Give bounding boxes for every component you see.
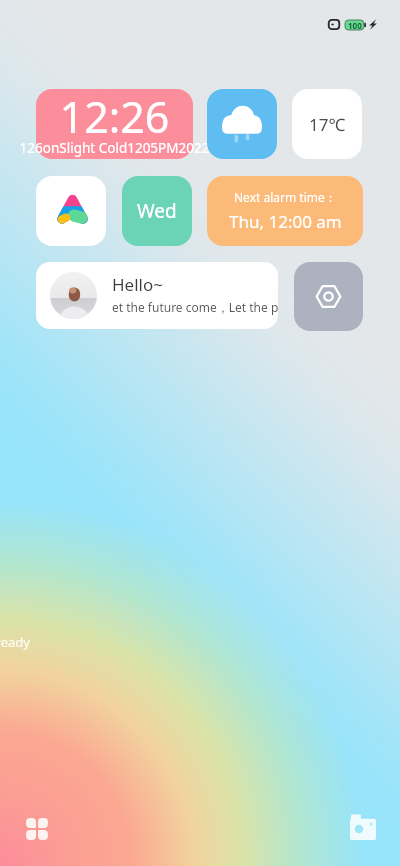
staticText: 17℃ (309, 113, 346, 136)
button[interactable] (36, 89, 193, 159)
staticText: Wed (137, 198, 177, 224)
button[interactable]: Wed (122, 176, 192, 246)
button[interactable]: 17℃ (292, 89, 362, 159)
button[interactable]: Open app (36, 176, 106, 246)
button[interactable]: Camera (343, 807, 383, 847)
button[interactable]: App drawer (17, 809, 57, 849)
staticText: Hello~ (112, 273, 163, 296)
staticText: 126onSlight Cold1205PM2022 (0, 139, 229, 157)
button[interactable]: Next alarm time： (207, 176, 363, 246)
staticText: Next alarm time： (234, 189, 337, 205)
staticText: 100 (348, 20, 362, 30)
button[interactable]: Weather (207, 89, 277, 159)
staticText: 12:26 (36, 87, 193, 146)
staticText: et the future come，Let the past (112, 299, 278, 315)
staticText: Everything is ready (0, 633, 30, 651)
button[interactable]: Settings (294, 262, 363, 331)
button[interactable] (36, 262, 278, 329)
staticText: Thu, 12:00 am (229, 210, 342, 233)
